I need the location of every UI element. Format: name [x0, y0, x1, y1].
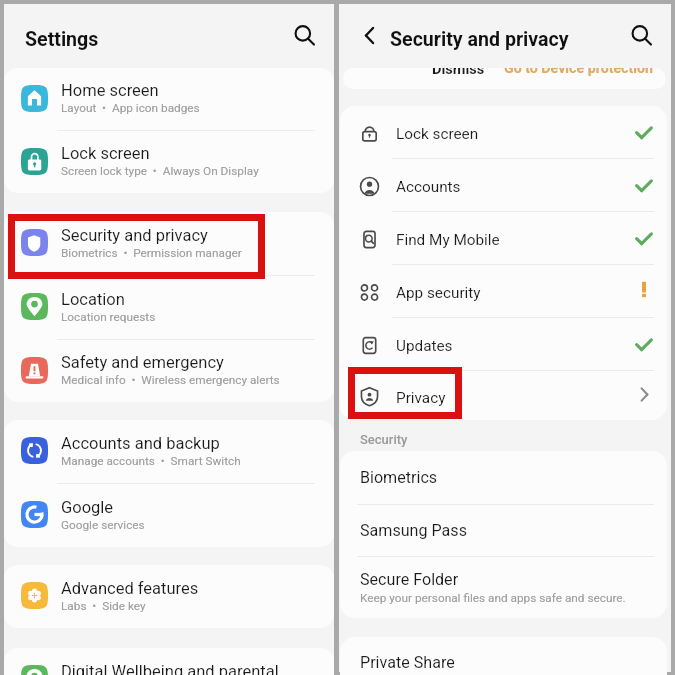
staticText: Lock screen: [396, 125, 479, 143]
button[interactable]: Samsung Pass: [340, 505, 667, 556]
staticText: Safety and emergency: [61, 353, 224, 372]
button[interactable]: Find My Mobile: [340, 212, 667, 264]
staticText: Accounts: [396, 178, 461, 196]
staticText: Updates: [396, 337, 453, 355]
button[interactable]: Digital Wellbeing and parental: [4, 648, 334, 675]
staticText: Medical info • Wireless emergency alerts: [61, 373, 280, 387]
button[interactable]: Lock screen: [4, 131, 334, 193]
button[interactable]: Accounts and backup: [4, 420, 334, 483]
staticText: Google: [61, 498, 114, 517]
button[interactable]: Secure Folder: [340, 557, 667, 618]
staticText: Secure Folder: [360, 570, 459, 589]
button[interactable]: Privacy: [340, 371, 667, 420]
staticText: Lock screen: [61, 144, 150, 163]
staticText: Private Share: [360, 653, 455, 672]
button[interactable]: Advanced features: [4, 565, 334, 628]
button[interactable]: Security and privacy: [4, 212, 334, 275]
staticText: Go to Device protection: [504, 68, 654, 77]
staticText: Keep your personal files and apps safe a…: [360, 591, 626, 605]
button[interactable]: Safety and emergency: [4, 340, 334, 402]
button[interactable]: Updates: [340, 318, 667, 370]
staticText: Advanced features: [61, 579, 199, 598]
button[interactable]: Search: [286, 17, 322, 53]
staticText: Privacy: [396, 389, 446, 407]
staticText: Google services: [61, 518, 145, 532]
staticText: Security and privacy: [390, 28, 569, 51]
button[interactable]: Private Share: [340, 637, 667, 675]
staticText: Accounts and backup: [61, 434, 220, 453]
staticText: Home screen: [61, 81, 159, 100]
staticText: App security: [396, 284, 481, 302]
staticText: Find My Mobile: [396, 231, 500, 249]
staticText: Dismiss: [432, 68, 485, 77]
button[interactable]: Home screen: [4, 68, 334, 130]
staticText: Security: [360, 432, 408, 447]
button[interactable]: Search: [623, 17, 659, 53]
staticText: Security and privacy: [61, 226, 208, 245]
button[interactable]: Lock screen: [340, 106, 667, 158]
staticText: Manage accounts • Smart Switch: [61, 454, 241, 468]
staticText: Biometrics • Permission manager: [61, 246, 242, 260]
staticText: Labs • Side key: [61, 599, 146, 613]
staticText: Layout • App icon badges: [61, 101, 200, 115]
button[interactable]: Google: [4, 484, 334, 547]
staticText: Screen lock type • Always On Display: [61, 164, 259, 178]
staticText: Digital Wellbeing and parental: [61, 662, 279, 675]
staticText: Location: [61, 290, 125, 309]
staticText: Location requests: [61, 310, 156, 324]
staticText: Samsung Pass: [360, 521, 467, 540]
button[interactable]: Accounts: [340, 159, 667, 211]
button[interactable]: App security: [340, 265, 667, 317]
button[interactable]: Biometrics: [340, 451, 667, 504]
staticText: Biometrics: [360, 468, 438, 487]
button[interactable]: Back: [352, 18, 386, 52]
staticText: Settings: [25, 28, 99, 51]
button[interactable]: Location: [4, 276, 334, 339]
